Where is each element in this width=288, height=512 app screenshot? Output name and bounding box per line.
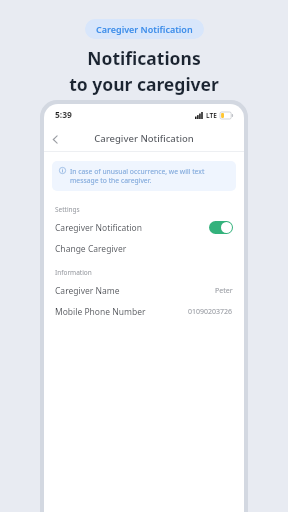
staticText: to your caregiver <box>69 72 219 96</box>
staticText: Caregiver Notification <box>55 222 143 234</box>
staticText: 01090203726 <box>188 307 233 317</box>
staticText: In case of unusual occurrence, we will t… <box>70 167 229 185</box>
staticText: Caregiver Name <box>55 285 120 297</box>
staticText: Information <box>55 268 92 277</box>
staticText: Change Caregiver <box>55 243 127 255</box>
staticText: Notifications <box>87 46 201 70</box>
button[interactable]: In case of unusual occurrence, we will t… <box>52 161 236 191</box>
staticText: Caregiver Notification <box>96 23 193 35</box>
button[interactable]: Mobile Phone Number <box>44 301 244 322</box>
staticText: Peter <box>215 286 233 296</box>
button[interactable]: Change Caregiver <box>44 238 244 259</box>
button[interactable]: Caregiver Notification toggle <box>209 221 233 234</box>
staticText: LTE <box>206 111 217 120</box>
button[interactable]: Caregiver Notification <box>85 19 204 39</box>
button[interactable]: Caregiver Notification <box>44 217 244 238</box>
button[interactable]: Caregiver Name <box>44 280 244 301</box>
button[interactable]: Back <box>44 128 66 150</box>
staticText: Caregiver Notification <box>94 132 194 145</box>
staticText: Settings <box>55 205 80 214</box>
staticText: Mobile Phone Number <box>55 306 146 318</box>
staticText: 5:39 <box>55 109 72 121</box>
